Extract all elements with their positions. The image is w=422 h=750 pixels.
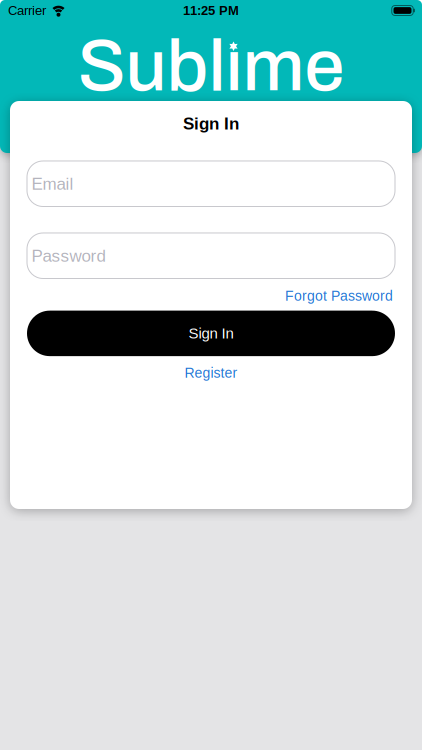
staticText: Forgot Password [285,288,393,304]
button[interactable]: Email [27,161,395,206]
staticText: Sublıme [77,27,344,105]
staticText: Sign In [188,325,233,342]
staticText: Sign In [183,114,239,133]
staticText: Carrier [8,3,46,18]
staticText: Register [184,365,237,381]
button[interactable]: Sign In [27,311,395,356]
staticText: Email [31,174,73,193]
staticText: Password [31,246,105,265]
staticText: 11:25 PM [183,3,239,18]
button[interactable]: Register [184,365,237,381]
button[interactable]: Password [27,233,395,278]
button[interactable]: Forgot Password [285,288,393,304]
